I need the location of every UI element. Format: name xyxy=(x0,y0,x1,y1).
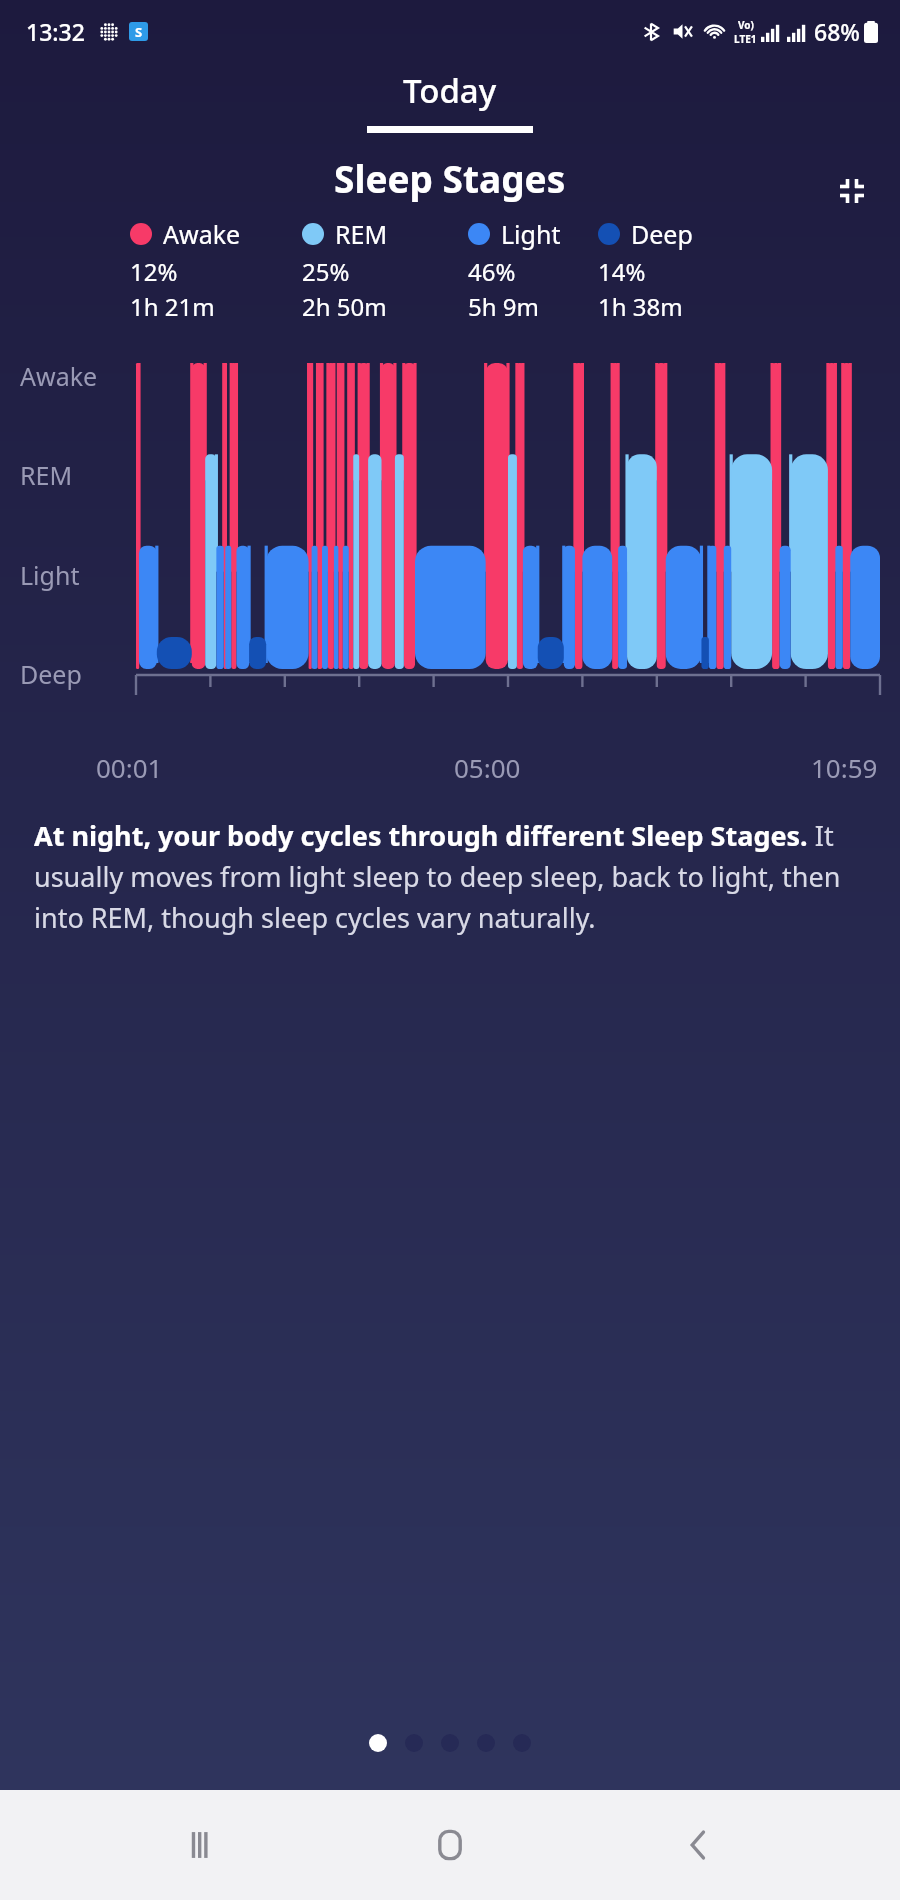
staticText: Deep xyxy=(631,217,693,251)
button[interactable]: Page 4 xyxy=(477,1734,495,1752)
staticText: Vo) xyxy=(738,18,754,32)
staticText: 12% xyxy=(130,255,178,288)
button[interactable]: Page 1 xyxy=(369,1734,387,1752)
button[interactable]: Recent apps xyxy=(158,1800,248,1890)
staticText: REM xyxy=(20,458,73,492)
button[interactable]: Page 5 xyxy=(513,1734,531,1752)
staticText: REM xyxy=(335,217,388,251)
staticText: Today xyxy=(403,68,497,113)
button[interactable]: Back xyxy=(653,1800,743,1890)
button[interactable]: Deep xyxy=(598,217,693,323)
staticText: 68% xyxy=(814,16,860,47)
button[interactable]: Awake xyxy=(130,217,302,323)
button[interactable]: Page 2 xyxy=(405,1734,423,1752)
staticText: 05:00 xyxy=(454,750,521,785)
staticText: At night, your body cycles through diffe… xyxy=(34,817,866,936)
staticText: 5h 9m xyxy=(468,290,539,323)
staticText: 1h 21m xyxy=(130,290,215,323)
staticText: 14% xyxy=(598,255,646,288)
staticText: 46% xyxy=(468,255,516,288)
staticText: 25% xyxy=(302,255,350,288)
staticText: 1h 38m xyxy=(598,290,683,323)
staticText: 2h 50m xyxy=(302,290,387,323)
button[interactable]: Page 3 xyxy=(441,1734,459,1752)
button[interactable]: Collapse chart xyxy=(828,167,876,215)
staticText: S xyxy=(135,23,143,41)
staticText: Light xyxy=(501,217,561,251)
staticText: Deep xyxy=(20,657,82,691)
staticText: Light xyxy=(20,558,80,592)
staticText: 13:32 xyxy=(26,16,85,47)
staticText: Awake xyxy=(163,217,241,251)
staticText: LTE1 xyxy=(734,32,757,46)
staticText: Awake xyxy=(20,359,98,393)
staticText: Sleep Stages xyxy=(334,153,566,203)
staticText: 10:59 xyxy=(811,750,878,785)
button[interactable]: REM xyxy=(302,217,468,323)
staticText: 00:01 xyxy=(96,750,163,785)
button[interactable]: Today xyxy=(333,62,567,139)
button[interactable]: Light xyxy=(468,217,598,323)
button[interactable]: Home xyxy=(405,1800,495,1890)
